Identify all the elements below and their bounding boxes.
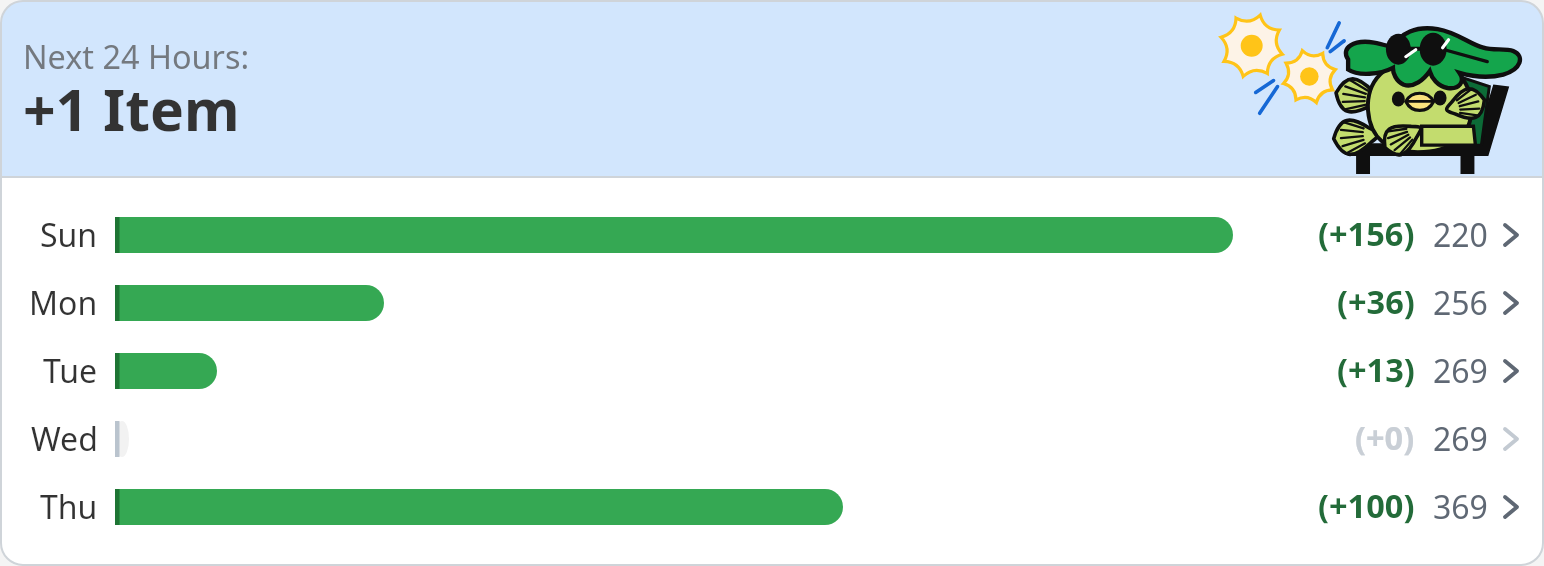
staticText: 256 xyxy=(1433,281,1488,325)
other: Open Sun details xyxy=(1503,223,1520,247)
other: Open Mon details xyxy=(1503,291,1520,315)
staticText: 269 xyxy=(1433,349,1488,393)
staticText: Next 24 Hours: xyxy=(23,34,250,78)
staticText: Wed xyxy=(31,417,98,461)
staticText: +1 Item xyxy=(23,70,240,148)
button[interactable]: Mon xyxy=(1,269,1543,337)
button[interactable]: Wed xyxy=(1,405,1543,473)
staticText: 369 xyxy=(1433,485,1488,529)
other: Forecast mascot illustration xyxy=(1197,1,1543,176)
staticText: Tue xyxy=(43,349,98,393)
button[interactable]: Sun xyxy=(1,201,1543,269)
other: Open Tue details xyxy=(1503,359,1520,383)
staticText: 220 xyxy=(1433,213,1488,257)
staticText: 269 xyxy=(1433,417,1488,461)
other: Open Wed details xyxy=(1503,427,1520,451)
staticText: Thu xyxy=(40,485,98,529)
button[interactable]: Thu xyxy=(1,473,1543,541)
staticText: (+156) xyxy=(1318,211,1415,255)
staticText: (+100) xyxy=(1318,483,1415,527)
staticText: Sun xyxy=(40,213,98,257)
staticText: (+13) xyxy=(1337,347,1415,391)
staticText: (+0) xyxy=(1355,415,1415,459)
button[interactable]: Next 24 Hours: +1 Item xyxy=(1,1,1543,176)
other: Open Thu details xyxy=(1503,495,1520,519)
staticText: Mon xyxy=(29,281,98,325)
staticText: (+36) xyxy=(1337,279,1415,323)
button[interactable]: Tue xyxy=(1,337,1543,405)
